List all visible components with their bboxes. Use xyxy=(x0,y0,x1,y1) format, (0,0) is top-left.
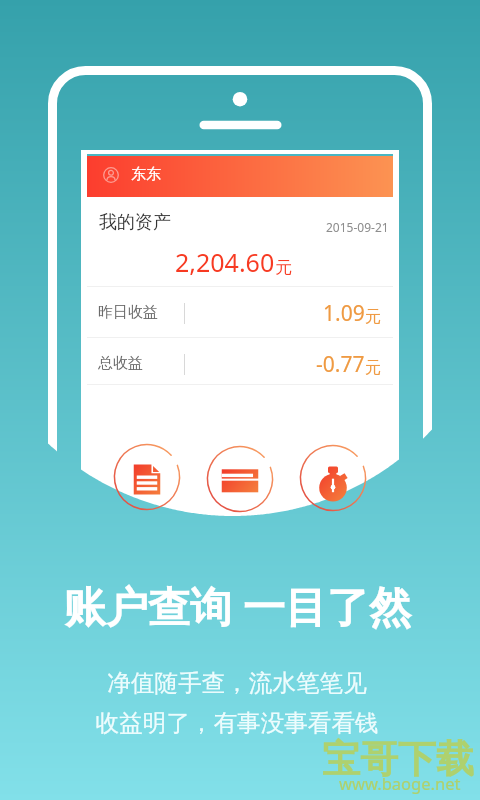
staticText: 2015-09-21 xyxy=(326,219,389,235)
button[interactable]: 总收益 xyxy=(87,337,393,385)
staticText: 元 xyxy=(365,307,381,327)
button[interactable]: History xyxy=(297,442,369,514)
staticText: 2,204.60 xyxy=(175,245,275,279)
button[interactable]: 东东 xyxy=(87,156,393,197)
staticText: 元 xyxy=(275,257,292,278)
staticText: 总收益 xyxy=(98,354,143,373)
staticText: 宝哥下载 xyxy=(322,735,474,783)
staticText: 昨日收益 xyxy=(98,303,158,322)
staticText: 我的资产 xyxy=(99,211,171,234)
staticText: 净值随手查，流水笔笔见 xyxy=(107,668,367,698)
staticText: 账户查询 一目了然 xyxy=(64,577,411,634)
staticText: 东东 xyxy=(131,165,161,184)
staticText: www.baoge.net xyxy=(339,772,461,794)
button[interactable]: Cards xyxy=(204,443,276,515)
staticText: 收益明了，有事没事看看钱 xyxy=(95,708,379,738)
button[interactable]: Statements xyxy=(111,441,183,513)
button[interactable]: 昨日收益 xyxy=(87,286,393,334)
staticText: -0.77 xyxy=(316,350,365,379)
staticText: 1.09 xyxy=(323,299,365,328)
staticText: 元 xyxy=(365,358,381,378)
